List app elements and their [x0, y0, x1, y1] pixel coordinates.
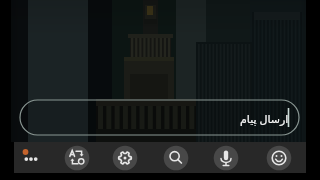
staticText: ارسال پیام: [240, 111, 289, 126]
button[interactable]: Translate: [61, 142, 93, 174]
button[interactable]: Search: [160, 142, 192, 174]
button[interactable]: Settings: [109, 142, 141, 174]
button[interactable]: ارسال پیام: [200, 109, 289, 127]
button[interactable]: Emoji: [263, 142, 295, 174]
button[interactable]: More options: [15, 142, 47, 174]
button[interactable]: Voice input: [210, 142, 242, 174]
